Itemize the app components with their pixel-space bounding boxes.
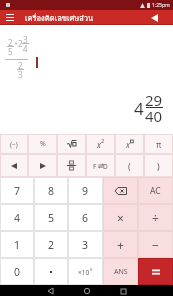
staticText: x [126, 139, 130, 150]
button[interactable]: 4 [0, 204, 34, 231]
staticText: 0 [14, 265, 21, 279]
button[interactable]: AC [138, 177, 173, 204]
staticText: 6 [82, 211, 89, 225]
button[interactable] [151, 14, 158, 22]
staticText: 5 [8, 46, 13, 57]
staticText: 1:25pm [152, 2, 170, 9]
staticText: 9 [82, 184, 89, 198]
staticText: 2 [18, 38, 23, 49]
button[interactable]: 9 [68, 177, 103, 204]
button[interactable]: x [115, 134, 144, 154]
button[interactable]: ( [115, 154, 144, 177]
staticText: − [152, 237, 159, 253]
staticText: 4 [23, 43, 28, 54]
staticText: ×10 [78, 268, 90, 277]
staticText: 4 [14, 211, 21, 225]
staticText: x [90, 266, 93, 272]
staticText: 2 [8, 37, 13, 48]
button[interactable]: + [103, 231, 138, 258]
button[interactable]: 6 [68, 204, 103, 231]
button[interactable]: 5 [34, 204, 68, 231]
button[interactable] [103, 177, 138, 204]
staticText: 3 [23, 34, 28, 45]
button[interactable]: ÷ [138, 204, 173, 231]
button[interactable]: 7 [0, 177, 34, 204]
staticText: 29 [145, 90, 163, 110]
staticText: ( [128, 160, 131, 172]
staticText: 1 [14, 238, 21, 252]
button[interactable]: ANS [103, 258, 138, 285]
staticText: 4 [134, 97, 144, 120]
staticText: 2 [101, 137, 105, 145]
staticText: 2 [18, 60, 23, 71]
staticText: (−) [10, 140, 18, 149]
button[interactable] [0, 154, 28, 177]
staticText: ANS [114, 267, 128, 277]
button[interactable]: 8 [34, 177, 68, 204]
button[interactable]: F [86, 154, 115, 177]
button[interactable]: 1 [0, 231, 34, 258]
button[interactable]: π [144, 134, 173, 154]
staticText: x [97, 139, 101, 150]
button[interactable] [48, 288, 53, 294]
button[interactable]: (−) [0, 134, 28, 154]
button[interactable]: ) [144, 154, 173, 177]
staticText: 3 [18, 69, 23, 80]
staticText: F [93, 162, 97, 171]
staticText: π [156, 139, 162, 150]
button[interactable] [84, 288, 90, 294]
button[interactable] [121, 289, 126, 294]
staticText: ÷ [152, 210, 159, 226]
staticText: + [14, 39, 19, 49]
button[interactable]: % [28, 134, 57, 154]
button[interactable] [57, 154, 86, 177]
staticText: ) [157, 160, 160, 172]
button[interactable]: − [138, 231, 173, 258]
button[interactable]: 0 [0, 258, 34, 285]
staticText: 8 [48, 184, 55, 198]
button[interactable]: 2 [34, 231, 68, 258]
button[interactable]: 3 [68, 231, 103, 258]
staticText: × [117, 210, 124, 226]
button[interactable]: × [103, 204, 138, 231]
staticText: % [40, 139, 46, 149]
button[interactable] [28, 154, 57, 177]
staticText: D [103, 162, 108, 171]
staticText: 2 [48, 238, 55, 252]
button[interactable] [34, 258, 68, 285]
button[interactable] [57, 134, 86, 154]
staticText: 5 [48, 211, 55, 225]
button[interactable] [138, 258, 173, 285]
staticText: 40 [145, 106, 163, 126]
staticText: AC [150, 185, 161, 197]
staticText: 7 [14, 184, 21, 198]
button[interactable] [6, 14, 14, 21]
staticText: เครื่องคิดเลขเศษส่วน [25, 12, 94, 24]
staticText: 3 [82, 238, 89, 252]
staticText: + [117, 237, 124, 253]
button[interactable]: ×10 [68, 258, 103, 285]
button[interactable]: x [86, 134, 115, 154]
